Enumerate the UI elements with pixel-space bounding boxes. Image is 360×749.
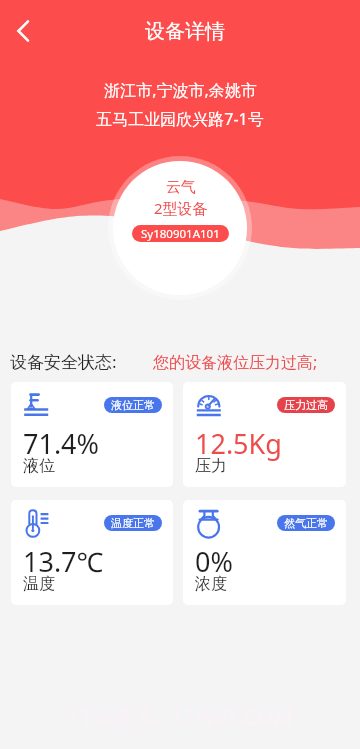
button[interactable]: 云气: [113, 161, 247, 295]
staticText: 五马工业园欣兴路7-1号: [96, 108, 264, 130]
staticText: 71.4%: [23, 425, 100, 462]
button[interactable]: 压力过高: [183, 382, 346, 487]
staticText: 设备安全状态:: [10, 350, 117, 373]
staticText: 2型设备: [154, 198, 208, 218]
staticText: 压力过高: [284, 398, 328, 412]
button[interactable]: Back: [0, 8, 46, 54]
staticText: 设备详情: [145, 19, 225, 44]
staticText: 您的设备液位压力过高;: [153, 351, 318, 373]
staticText: 浙江市,宁波市,余姚市: [104, 79, 257, 101]
staticText: Sy180901A101: [141, 226, 220, 242]
staticText: 0%: [195, 543, 233, 580]
staticText: 然气正常: [284, 516, 328, 530]
staticText: 温度: [23, 574, 55, 594]
button[interactable]: 温度正常: [11, 500, 173, 605]
button[interactable]: 液位正常: [11, 382, 173, 487]
button[interactable]: 然气正常: [183, 500, 346, 605]
staticText: 液位: [23, 456, 55, 476]
staticText: 12.5Kg: [195, 425, 282, 462]
staticText: 温度正常: [111, 516, 155, 530]
staticText: 云气: [166, 178, 196, 197]
staticText: 13.7℃: [23, 543, 104, 580]
staticText: 液位正常: [111, 398, 155, 412]
staticText: 浓度: [195, 574, 227, 594]
staticText: 压力: [195, 456, 227, 476]
